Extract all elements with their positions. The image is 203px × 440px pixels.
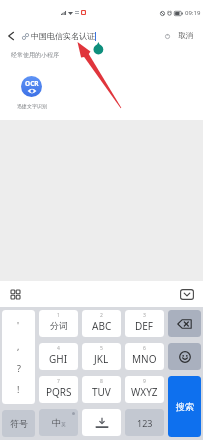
staticText: JKL	[94, 352, 109, 366]
staticText: !	[17, 383, 20, 395]
button[interactable]: Emoji	[168, 343, 201, 370]
staticText: 英	[61, 422, 66, 428]
staticText: GHI	[49, 352, 68, 366]
button[interactable]: Space	[82, 409, 121, 436]
staticText: 迅捷文字识别	[17, 103, 47, 109]
staticText: 4	[57, 345, 60, 352]
staticText: 符号	[10, 418, 28, 429]
button[interactable]: Settings	[161, 30, 173, 42]
staticText: ABC	[92, 319, 112, 333]
staticText: WXYZ	[131, 385, 158, 399]
staticText: 8	[100, 378, 103, 385]
staticText: 5	[100, 345, 103, 352]
staticText: 中	[52, 417, 61, 428]
staticText: 经常使用的小程序	[11, 51, 59, 59]
staticText: TUV	[92, 385, 111, 399]
button[interactable]: 取消	[178, 31, 193, 40]
staticText: 09:19	[185, 9, 201, 17]
staticText: 分词	[50, 320, 68, 331]
button[interactable]: Hide keyboard	[180, 289, 194, 300]
staticText: 2	[100, 312, 103, 319]
button[interactable]: '	[2, 310, 35, 404]
button[interactable]: Back	[0, 25, 22, 46]
button[interactable]: 搜索	[168, 376, 201, 437]
staticText: '	[17, 319, 20, 331]
button[interactable]: 5	[82, 343, 121, 370]
button[interactable]: 123	[125, 409, 164, 436]
staticText: 7	[57, 378, 60, 385]
staticText: ,	[17, 340, 20, 352]
staticText: ?	[17, 362, 21, 374]
button[interactable]: 6	[125, 343, 164, 370]
button[interactable]: 4	[39, 343, 78, 370]
staticText: OCR	[25, 79, 39, 88]
staticText: 3	[143, 312, 146, 319]
button[interactable]: 7	[39, 376, 78, 403]
button[interactable]: 符号	[2, 410, 35, 437]
staticText: DEF	[135, 319, 154, 333]
staticText: 中国电信实名认证	[31, 31, 95, 41]
button[interactable]: OCR	[9, 76, 54, 109]
button[interactable]: 3	[125, 310, 164, 337]
staticText: MNO	[132, 352, 157, 366]
other: Space	[94, 417, 110, 429]
button[interactable]: 中	[39, 409, 78, 436]
button[interactable]: Backspace	[168, 310, 201, 337]
button[interactable]: Keyboard menu	[8, 287, 22, 301]
staticText: 1	[57, 312, 60, 319]
button[interactable]: 9	[125, 376, 164, 403]
staticText: 9	[143, 378, 146, 385]
staticText: PQRS	[46, 385, 72, 399]
staticText: 搜索	[176, 401, 194, 412]
staticText: 取消	[178, 31, 193, 40]
button[interactable]: 2	[82, 310, 121, 337]
staticText: 123	[137, 417, 153, 429]
button[interactable]: 8	[82, 376, 121, 403]
button[interactable]: 1	[39, 310, 78, 337]
staticText: 6	[143, 345, 146, 352]
